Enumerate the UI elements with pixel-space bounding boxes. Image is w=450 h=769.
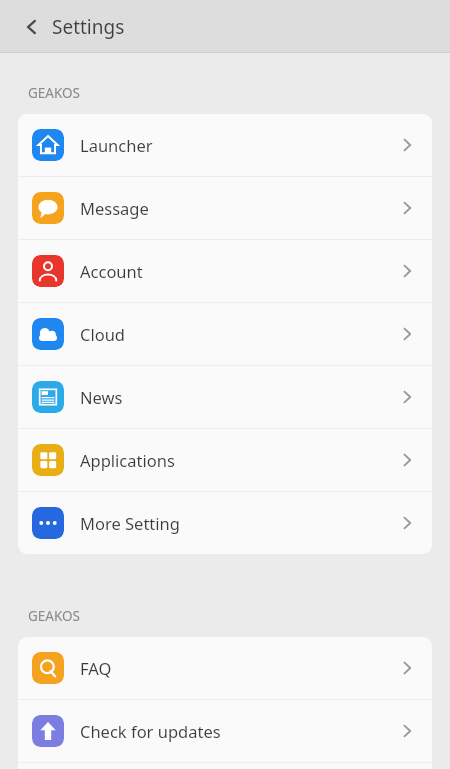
button[interactable]: Cloud xyxy=(18,303,432,365)
staticText: Account xyxy=(80,260,398,282)
staticText: Check for updates xyxy=(80,720,398,742)
button[interactable]: Account xyxy=(18,240,432,302)
button[interactable]: Back xyxy=(14,9,50,45)
staticText: Message xyxy=(80,197,398,219)
staticText: Launcher xyxy=(80,134,398,156)
staticText: GEAKOS xyxy=(28,84,81,102)
button[interactable]: Message xyxy=(18,177,432,239)
staticText: Settings xyxy=(52,14,125,40)
button[interactable]: Applications xyxy=(18,429,432,491)
button[interactable]: News xyxy=(18,366,432,428)
staticText: Applications xyxy=(80,449,398,471)
staticText: More Setting xyxy=(80,512,398,534)
button[interactable]: More Setting xyxy=(18,492,432,554)
staticText: FAQ xyxy=(80,657,398,679)
button[interactable]: Check for updates xyxy=(18,700,432,762)
staticText: GEAKOS xyxy=(28,607,81,625)
staticText: Cloud xyxy=(80,323,398,345)
button[interactable]: Launcher xyxy=(18,114,432,176)
staticText: News xyxy=(80,386,398,408)
button[interactable]: FAQ xyxy=(18,637,432,699)
